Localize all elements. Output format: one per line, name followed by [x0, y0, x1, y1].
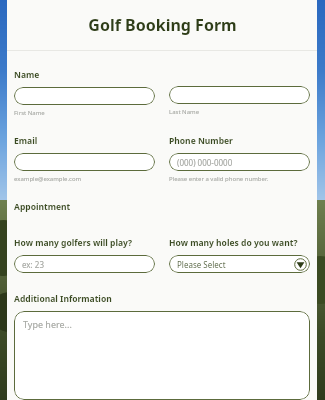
staticText: Appointment: [14, 201, 71, 213]
staticText: Additional Information: [14, 293, 112, 305]
button[interactable]: How many holes do you want, select: [169, 255, 310, 273]
button[interactable]: [14, 87, 155, 105]
button[interactable]: [14, 153, 155, 171]
staticText: Phone Number: [169, 135, 233, 147]
staticText: Last Name: [169, 108, 200, 116]
staticText: (000) 000-0000: [177, 157, 233, 168]
staticText: First Name: [14, 109, 45, 117]
button[interactable]: [169, 86, 310, 104]
staticText: How many golfers will play?: [14, 237, 133, 249]
staticText: Name: [14, 69, 40, 81]
staticText: How many holes do you want?: [169, 237, 298, 249]
button[interactable]: ex: 23: [14, 255, 155, 273]
staticText: Please Select: [177, 259, 226, 270]
button[interactable]: Type here...: [14, 311, 310, 400]
button[interactable]: (000) 000-0000: [169, 153, 310, 171]
staticText: Please enter a valid phone number.: [169, 175, 269, 183]
staticText: Email: [14, 135, 38, 147]
staticText: Golf Booking Form: [88, 14, 237, 36]
staticText: Type here...: [23, 318, 72, 330]
staticText: ex: 23: [22, 259, 44, 270]
staticText: example@example.com: [14, 175, 82, 183]
